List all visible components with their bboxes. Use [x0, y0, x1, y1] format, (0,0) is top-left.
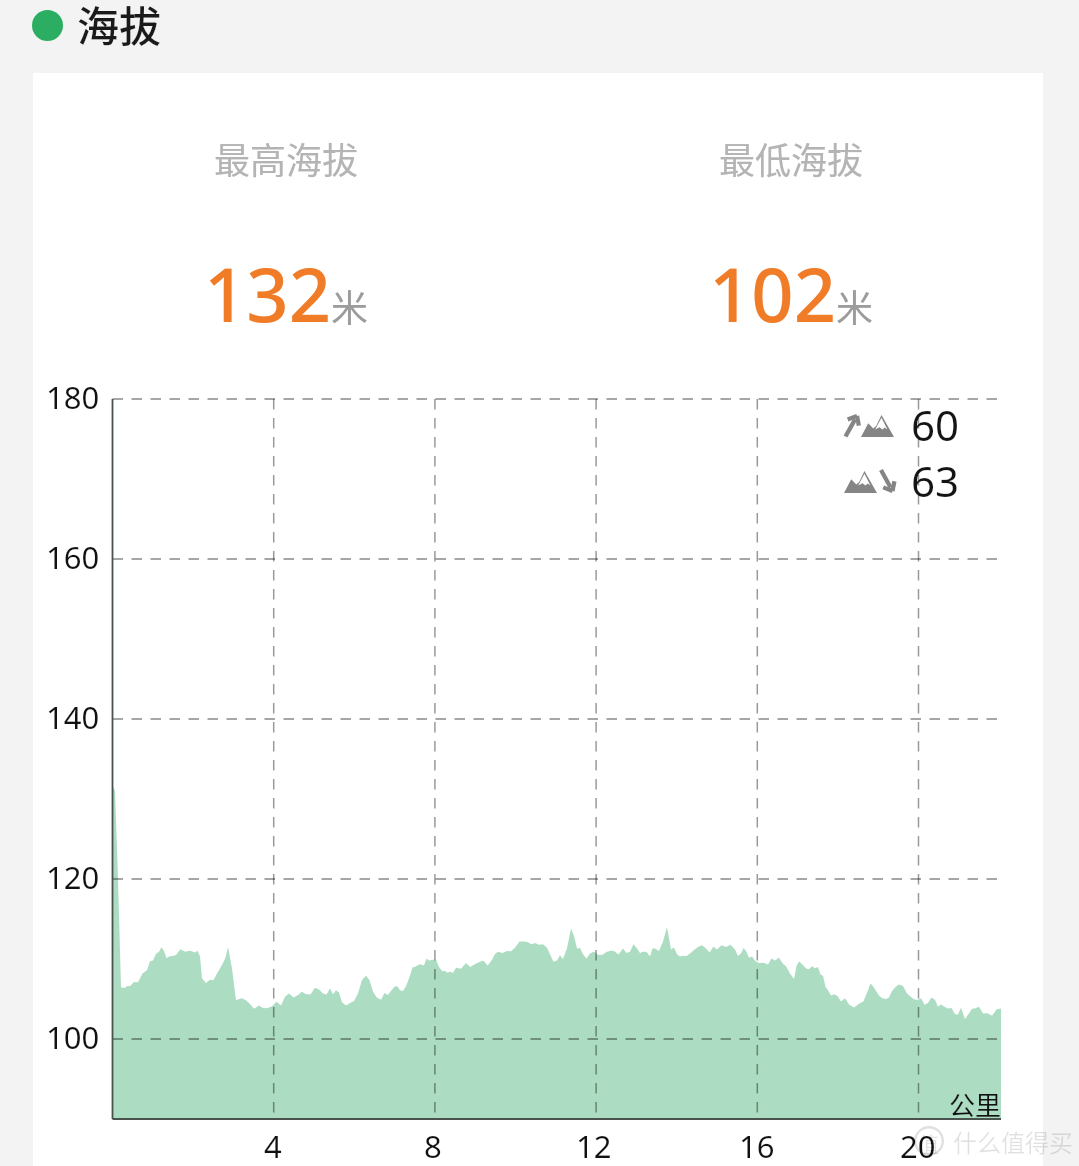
staticText: 120 — [46, 856, 100, 898]
staticText: 140 — [46, 696, 100, 738]
staticText: 102 — [709, 243, 836, 344]
staticText: 160 — [46, 536, 100, 578]
staticText: 16 — [739, 1125, 775, 1166]
staticText: 什么值得买 — [953, 1124, 1073, 1159]
staticText: 60 — [911, 396, 960, 453]
staticText: 20 — [900, 1125, 936, 1166]
staticText: 12 — [576, 1125, 612, 1166]
button[interactable]: Total ascent 60 metres — [844, 396, 960, 453]
staticText: 最高海拔 — [214, 132, 359, 184]
staticText: 63 — [911, 452, 960, 509]
staticText: 132 — [204, 243, 331, 344]
staticText: 8 — [424, 1125, 442, 1166]
button[interactable]: 海拔 — [0, 0, 1079, 73]
staticText: 米 — [331, 279, 368, 333]
staticText: 公里 — [949, 1085, 1002, 1123]
staticText: 4 — [264, 1125, 282, 1166]
staticText: 最低海拔 — [719, 132, 864, 184]
staticText: 值 — [918, 1128, 939, 1158]
staticText: 米 — [836, 279, 873, 333]
button[interactable]: Total descent 63 metres — [844, 452, 960, 509]
staticText: 180 — [46, 376, 100, 418]
staticText: 海拔 — [77, 0, 162, 54]
staticText: 100 — [46, 1016, 100, 1058]
